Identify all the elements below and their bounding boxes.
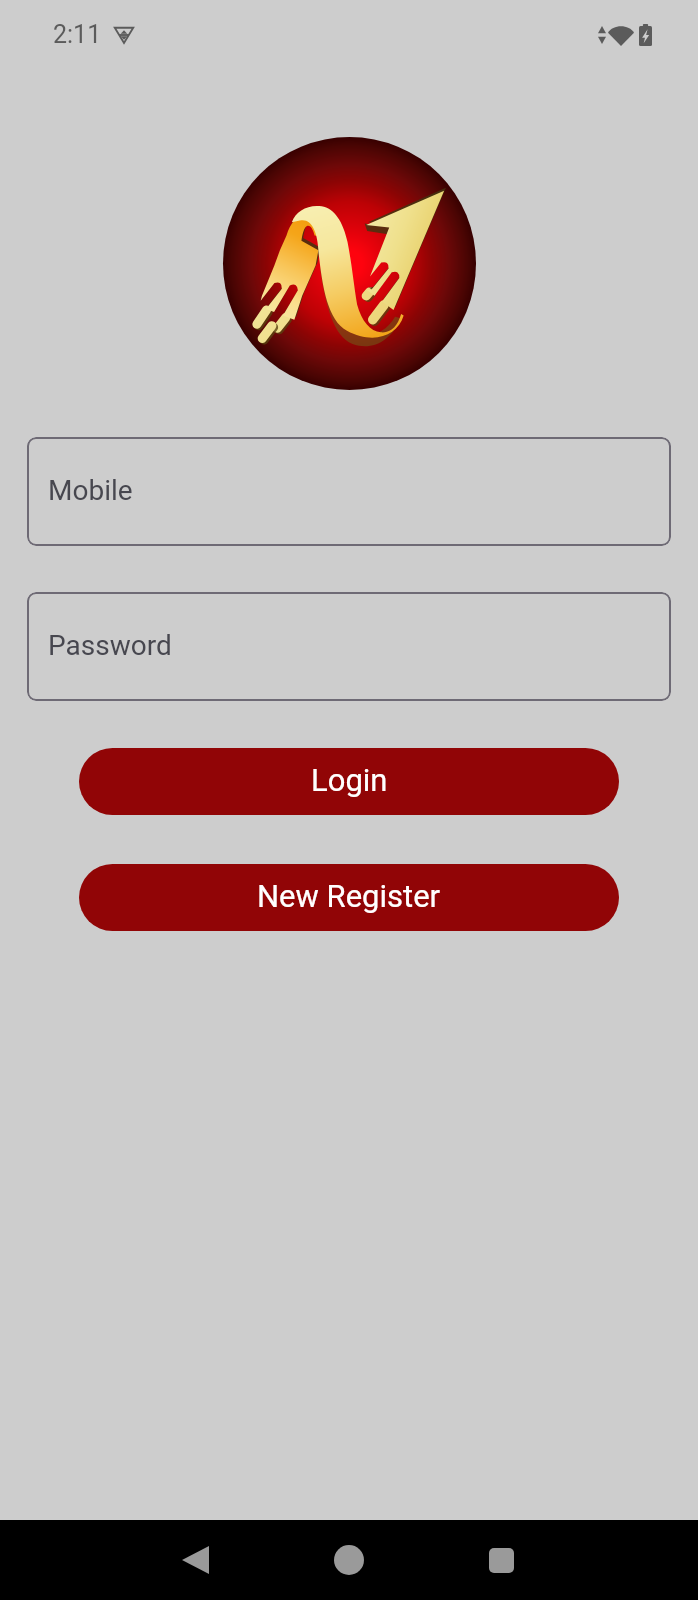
staticText: Mobile bbox=[48, 474, 133, 507]
button[interactable]: Mobile bbox=[27, 437, 671, 546]
button[interactable]: Back bbox=[155, 1520, 235, 1600]
staticText: Login bbox=[311, 762, 388, 798]
button[interactable]: New Register bbox=[79, 864, 619, 931]
button[interactable]: Recents bbox=[461, 1520, 541, 1600]
button[interactable]: Password bbox=[27, 592, 671, 701]
staticText: New Register bbox=[257, 878, 441, 914]
button[interactable]: Login bbox=[79, 748, 619, 815]
button[interactable]: Home bbox=[309, 1520, 389, 1600]
staticText: Password bbox=[48, 629, 172, 662]
staticText: 2:11 bbox=[53, 20, 102, 49]
